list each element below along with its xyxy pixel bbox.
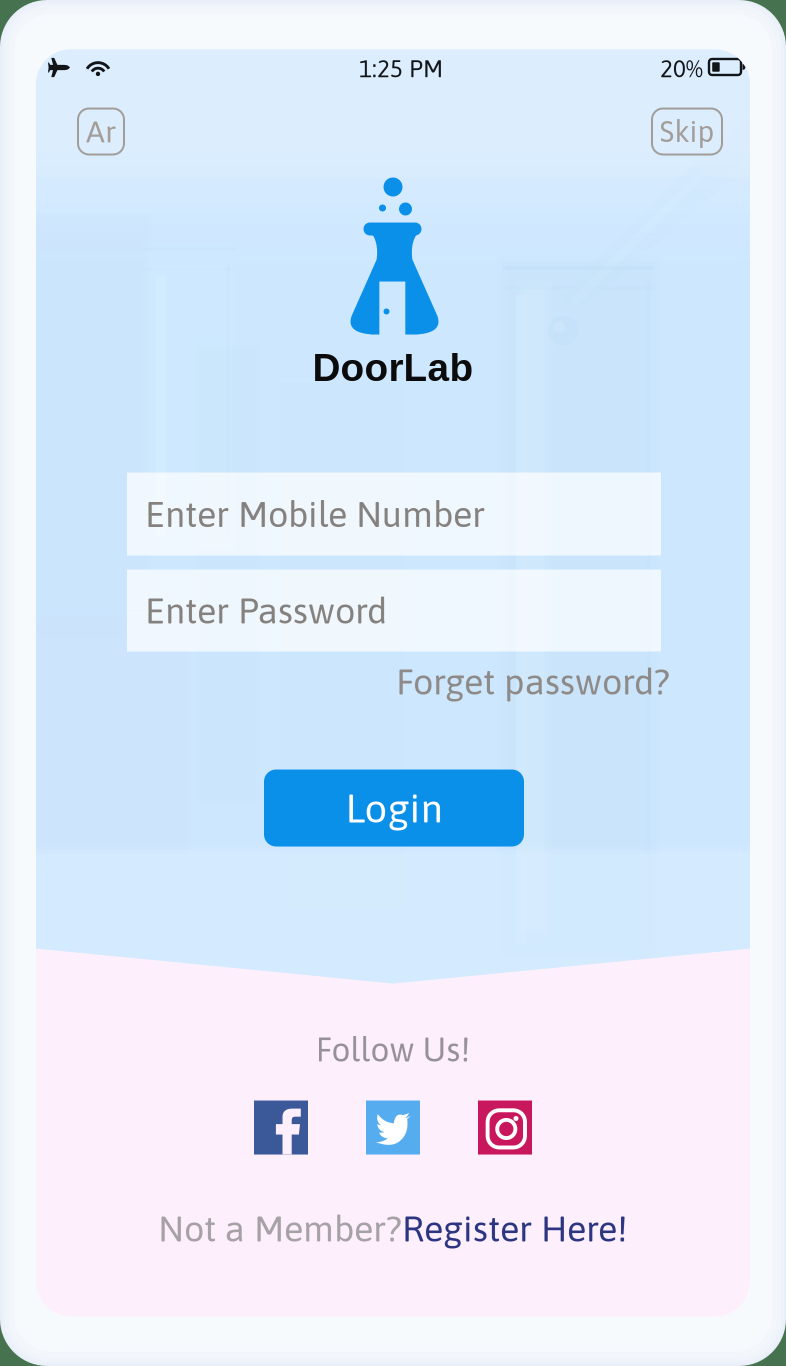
staticText: Skip (659, 115, 714, 148)
button[interactable]: Login (264, 769, 524, 846)
staticText: Not a Member? (158, 1208, 402, 1249)
staticText: Register Here! (402, 1208, 628, 1249)
button[interactable]: Register Here! (402, 1208, 628, 1249)
staticText: DoorLab (312, 346, 473, 389)
staticText: Login (345, 785, 442, 831)
button[interactable]: Ar (78, 108, 124, 154)
staticText: Enter Mobile Number (145, 493, 485, 535)
staticText: Forget password? (396, 661, 670, 702)
button[interactable]: Twitter (366, 1100, 420, 1154)
staticText: Enter Password (145, 590, 387, 631)
staticText: Ar (86, 114, 116, 149)
staticText: Follow Us! (315, 1030, 470, 1069)
button[interactable]: Forget password? (350, 659, 670, 703)
staticText: 20% (660, 55, 703, 82)
button[interactable]: Facebook (254, 1100, 308, 1154)
staticText: 1:25 PM (359, 55, 443, 82)
button[interactable]: Skip (652, 108, 722, 154)
button[interactable]: Instagram (478, 1100, 532, 1154)
